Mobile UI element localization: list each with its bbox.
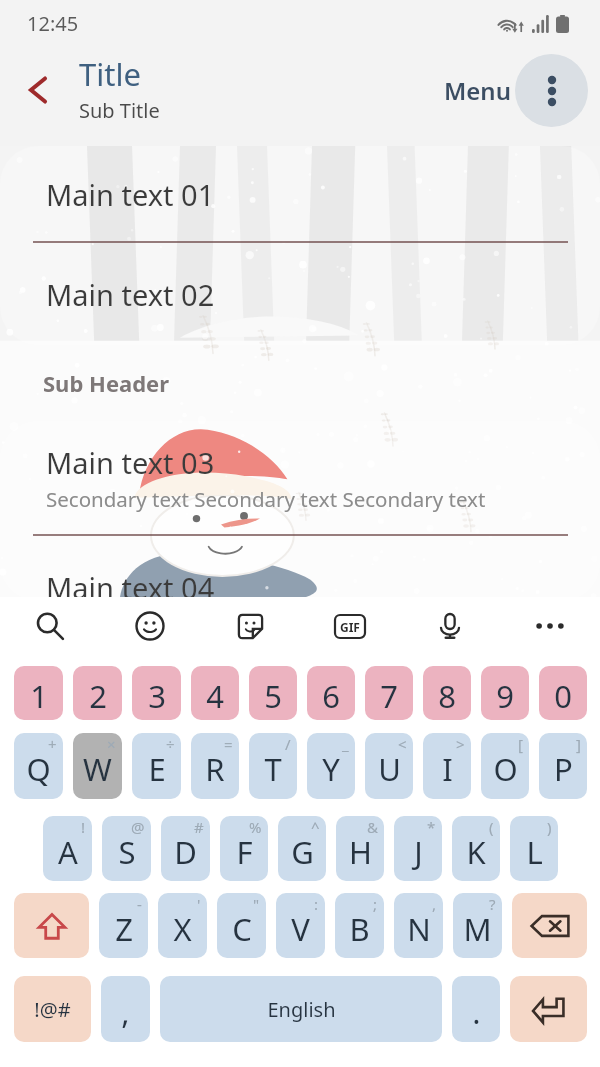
button[interactable]: Enter (510, 976, 587, 1042)
button[interactable]: Main text 01 (0, 146, 600, 242)
button[interactable]: @ (102, 816, 151, 881)
button[interactable]: _ (307, 733, 355, 799)
button[interactable]: Search (0, 597, 100, 655)
button[interactable]: Main text 02 (0, 243, 600, 345)
button[interactable]: ' (158, 893, 207, 958)
button[interactable]: ) (510, 816, 558, 881)
staticText: 7 (380, 675, 398, 717)
button[interactable]: ! (43, 816, 92, 881)
button[interactable]: & (336, 816, 384, 881)
button[interactable]: Back (10, 62, 66, 118)
button[interactable]: % (220, 816, 268, 881)
button[interactable]: 0 (539, 666, 587, 720)
staticText: E (148, 748, 166, 790)
button[interactable]: 9 (481, 666, 529, 720)
staticText: Sub Header (43, 368, 170, 398)
button[interactable]: More (500, 597, 600, 655)
button[interactable]: , (101, 976, 150, 1042)
staticText: N (407, 908, 431, 950)
staticText: & (367, 817, 378, 837)
button[interactable]: More options (515, 54, 588, 127)
button[interactable]: Backspace (512, 893, 587, 958)
staticText: R (205, 748, 225, 790)
staticText: 3 (148, 675, 166, 717)
staticText: " (253, 894, 260, 914)
staticText: U (378, 748, 401, 790)
button[interactable]: Sticker (200, 597, 300, 655)
staticText: = (224, 734, 233, 754)
staticText: 9 (496, 675, 514, 717)
staticText: ( (489, 817, 494, 837)
button[interactable]: 3 (132, 666, 181, 720)
staticText: P (554, 748, 573, 790)
staticText: 0 (554, 675, 572, 717)
button[interactable]: GIF (300, 597, 400, 655)
button[interactable]: Main text 03 (0, 421, 600, 535)
staticText: Secondary text Secondary text Secondary … (46, 485, 486, 513)
staticText: G (291, 831, 314, 873)
staticText: Main text 04 (46, 568, 215, 601)
staticText: * (427, 817, 436, 837)
button[interactable]: " (217, 893, 266, 958)
staticText: × (107, 734, 116, 754)
staticText: 2 (89, 675, 107, 717)
button[interactable]: 5 (249, 666, 297, 720)
button[interactable]: / (249, 733, 297, 799)
staticText: J (414, 831, 423, 873)
button[interactable]: Main text 04 (0, 536, 600, 601)
staticText: ' (197, 894, 201, 914)
staticText: _ (342, 734, 349, 754)
button[interactable]: * (394, 816, 442, 881)
button[interactable]: ^ (278, 816, 326, 881)
staticText: , (121, 991, 130, 1033)
button[interactable]: # (161, 816, 210, 881)
staticText: K (466, 831, 486, 873)
staticText: Z (115, 908, 133, 950)
button[interactable]: 6 (307, 666, 355, 720)
button[interactable]: - (99, 893, 148, 958)
button[interactable]: ? (453, 893, 502, 958)
staticText: T (264, 748, 282, 790)
staticText: Main text 02 (46, 275, 215, 314)
staticText: D (174, 831, 197, 873)
button[interactable]: 2 (73, 666, 122, 720)
staticText: / (285, 734, 291, 754)
button[interactable]: + (14, 733, 63, 799)
staticText: @ (131, 817, 145, 837)
staticText: B (349, 908, 370, 950)
staticText: M (463, 908, 492, 950)
button[interactable]: ] (539, 733, 587, 799)
button[interactable]: × (73, 733, 122, 799)
button[interactable]: Emoji (100, 597, 200, 655)
staticText: ] (576, 734, 581, 754)
button[interactable]: ; (335, 893, 384, 958)
button[interactable]: = (191, 733, 239, 799)
button[interactable]: ÷ (132, 733, 181, 799)
button[interactable]: < (365, 733, 413, 799)
staticText: X (173, 908, 192, 950)
staticText: English (267, 996, 336, 1023)
button[interactable]: 4 (191, 666, 239, 720)
button[interactable]: 7 (365, 666, 413, 720)
staticText: ; (373, 894, 378, 914)
staticText: 12:45 (27, 10, 79, 37)
button[interactable]: !@# (14, 976, 91, 1042)
button[interactable]: , (394, 893, 443, 958)
button[interactable]: ( (452, 816, 500, 881)
staticText: C (232, 908, 252, 950)
staticText: Q (26, 748, 51, 790)
button[interactable]: Voice input (400, 597, 500, 655)
button[interactable]: Shift (14, 893, 89, 958)
staticText: ! (81, 817, 86, 837)
staticText: ) (547, 817, 552, 837)
button[interactable]: : (276, 893, 325, 958)
button[interactable]: Menu (440, 66, 515, 115)
button[interactable]: . (452, 976, 500, 1042)
button[interactable]: [ (481, 733, 529, 799)
staticText: 4 (206, 675, 224, 717)
button[interactable]: > (423, 733, 471, 799)
button[interactable]: 1 (14, 666, 63, 720)
button[interactable]: English (160, 976, 442, 1042)
button[interactable]: 8 (423, 666, 471, 720)
staticText: - (137, 894, 142, 914)
